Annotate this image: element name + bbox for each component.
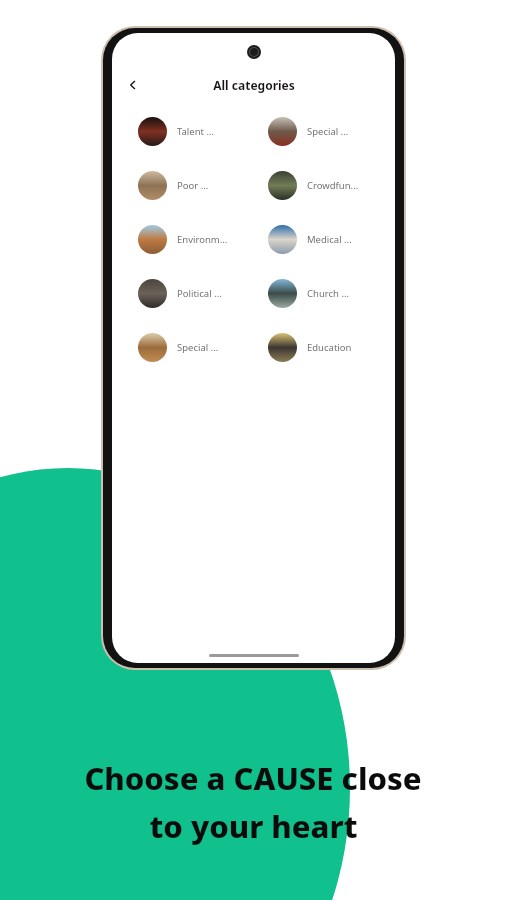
- staticText: Special ...: [177, 341, 219, 354]
- button[interactable]: Political ...: [128, 274, 249, 313]
- staticText: Medical ...: [307, 233, 352, 246]
- staticText: Education: [307, 341, 352, 354]
- staticText: Choose a CAUSE close: [84, 757, 422, 799]
- button[interactable]: Talent ...: [128, 112, 249, 151]
- staticText: Special ...: [307, 125, 349, 138]
- button[interactable]: Church ...: [258, 274, 379, 313]
- button[interactable]: Special ...: [128, 328, 249, 367]
- staticText: to your heart: [149, 805, 358, 847]
- staticText: All categories: [213, 77, 295, 93]
- staticText: Church ...: [307, 287, 350, 300]
- button[interactable]: Poor ...: [128, 166, 249, 205]
- button[interactable]: Medical ...: [258, 220, 379, 259]
- staticText: Environm...: [177, 233, 228, 246]
- button[interactable]: Education: [258, 328, 379, 367]
- staticText: Political ...: [177, 287, 222, 300]
- staticText: Poor ...: [177, 179, 209, 192]
- button[interactable]: Special ...: [258, 112, 379, 151]
- staticText: Crowdfun...: [307, 179, 359, 192]
- button[interactable]: Crowdfun...: [258, 166, 379, 205]
- button[interactable]: Back: [120, 72, 146, 98]
- button[interactable]: Environm...: [128, 220, 249, 259]
- staticText: Talent ...: [177, 125, 215, 138]
